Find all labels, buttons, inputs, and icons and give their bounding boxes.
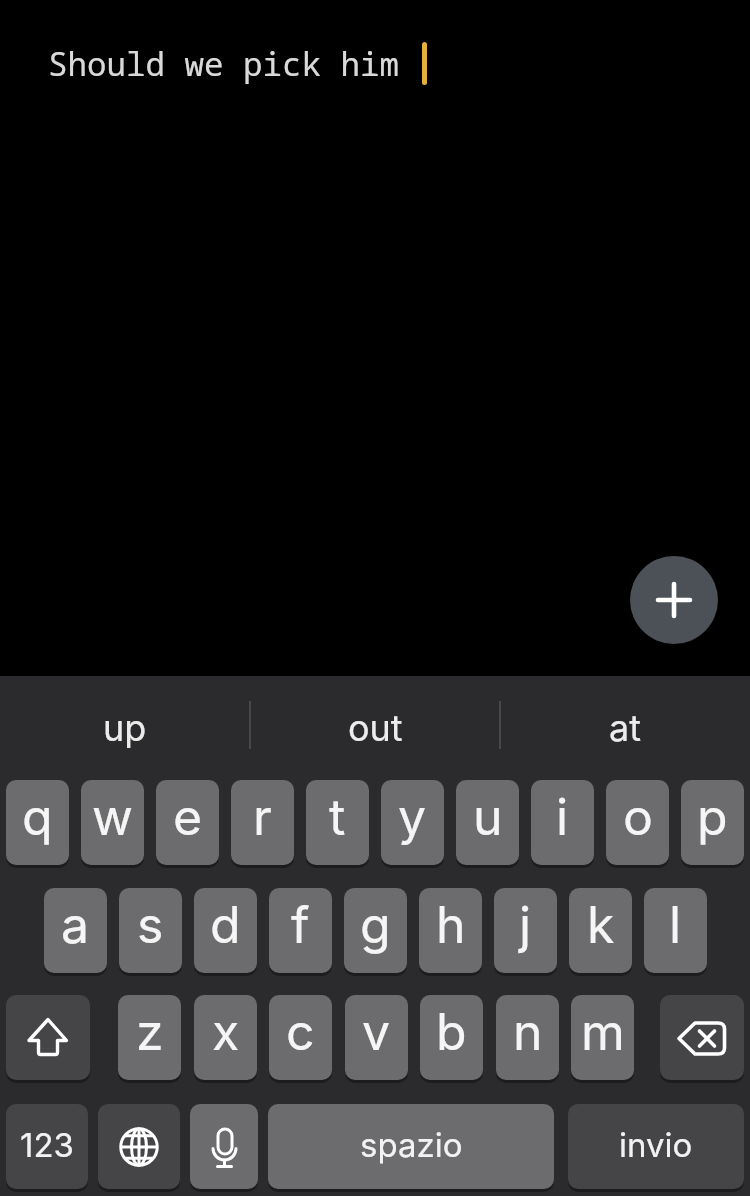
- button[interactable]: r: [231, 780, 294, 865]
- staticText: Should we pick him: [48, 41, 400, 85]
- staticText: o: [623, 787, 653, 847]
- staticText: e: [173, 787, 203, 847]
- staticText: j: [519, 895, 532, 955]
- button[interactable]: [630, 556, 718, 644]
- button[interactable]: p: [681, 780, 744, 865]
- button[interactable]: v: [345, 995, 408, 1080]
- button[interactable]: o: [606, 780, 669, 865]
- button[interactable]: g: [344, 888, 407, 973]
- button[interactable]: [190, 1104, 258, 1189]
- button[interactable]: j: [494, 888, 557, 973]
- button[interactable]: a: [44, 888, 107, 973]
- staticText: c: [286, 1002, 315, 1062]
- button[interactable]: w: [81, 780, 144, 865]
- staticText: m: [581, 1002, 625, 1062]
- button[interactable]: d: [194, 888, 257, 973]
- button[interactable]: [98, 1104, 180, 1189]
- button[interactable]: e: [156, 780, 219, 865]
- button[interactable]: i: [531, 780, 594, 865]
- staticText: v: [362, 1002, 391, 1062]
- button[interactable]: s: [119, 888, 182, 973]
- button[interactable]: 123: [6, 1104, 88, 1189]
- button[interactable]: u: [456, 780, 519, 865]
- staticText: r: [253, 787, 272, 847]
- button[interactable]: at: [500, 676, 750, 780]
- staticText: t: [329, 787, 346, 847]
- staticText: u: [473, 787, 503, 847]
- button[interactable]: h: [419, 888, 482, 973]
- button[interactable]: l: [644, 888, 707, 973]
- staticText: h: [436, 895, 466, 955]
- button[interactable]: k: [569, 888, 632, 973]
- button[interactable]: spazio: [268, 1104, 554, 1189]
- button[interactable]: n: [496, 995, 559, 1080]
- staticText: g: [360, 895, 391, 955]
- button[interactable]: y: [381, 780, 444, 865]
- staticText: d: [210, 895, 241, 955]
- button[interactable]: [6, 995, 90, 1080]
- staticText: s: [137, 895, 164, 955]
- staticText: p: [697, 787, 728, 847]
- staticText: y: [398, 787, 427, 847]
- staticText: at: [609, 706, 641, 750]
- staticText: out: [348, 706, 403, 750]
- button[interactable]: up: [0, 676, 250, 780]
- button[interactable]: out: [250, 676, 500, 780]
- staticText: i: [556, 787, 569, 847]
- staticText: x: [212, 1002, 240, 1062]
- button[interactable]: [660, 995, 744, 1080]
- button[interactable]: t: [306, 780, 369, 865]
- staticText: q: [22, 787, 53, 847]
- staticText: up: [103, 706, 147, 750]
- staticText: l: [669, 895, 682, 955]
- button[interactable]: c: [269, 995, 332, 1080]
- button[interactable]: m: [571, 995, 634, 1080]
- staticText: a: [61, 895, 90, 955]
- staticText: f: [291, 895, 310, 955]
- staticText: k: [587, 895, 615, 955]
- button[interactable]: f: [269, 888, 332, 973]
- button[interactable]: x: [194, 995, 257, 1080]
- staticText: w: [92, 787, 133, 847]
- button[interactable]: q: [6, 780, 69, 865]
- button[interactable]: invio: [568, 1104, 744, 1189]
- button[interactable]: z: [118, 995, 181, 1080]
- staticText: b: [436, 1002, 467, 1062]
- staticText: z: [136, 1002, 164, 1062]
- staticText: spazio: [360, 1125, 463, 1165]
- staticText: 123: [20, 1125, 74, 1165]
- staticText: invio: [619, 1125, 693, 1165]
- staticText: n: [513, 1002, 543, 1062]
- button[interactable]: b: [420, 995, 483, 1080]
